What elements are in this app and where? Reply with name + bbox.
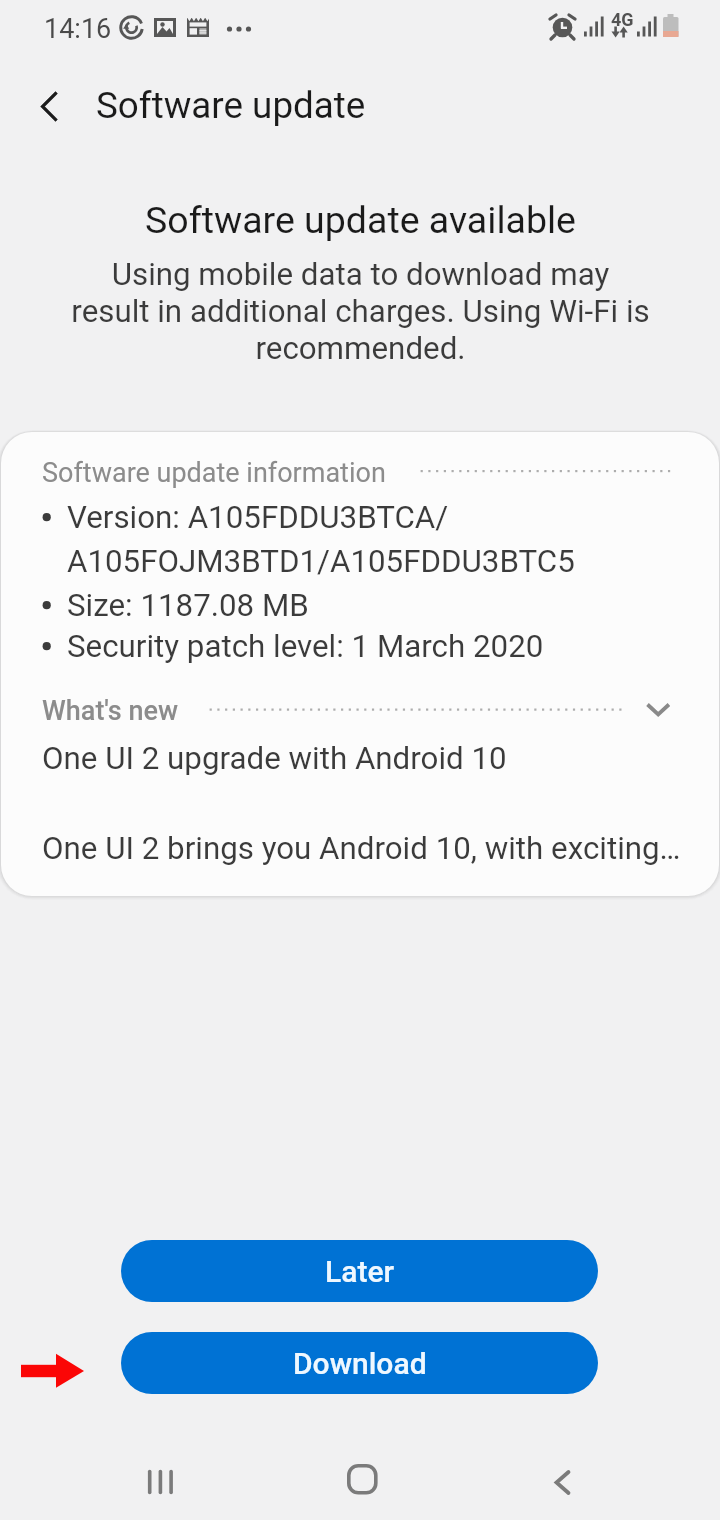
staticText: Size: 1187.08 MB	[67, 587, 309, 624]
button[interactable]: Home	[322, 1435, 402, 1515]
staticText: 4G	[611, 9, 634, 30]
button[interactable]: Recent apps	[120, 1435, 200, 1515]
staticText: Download	[293, 1346, 427, 1381]
staticText: What's new	[42, 695, 178, 727]
button[interactable]: What's new	[1, 684, 719, 730]
staticText: Security patch level: 1 March 2020	[67, 628, 544, 665]
staticText: Software update information	[42, 457, 386, 489]
button[interactable]: Download	[121, 1332, 598, 1394]
staticText: Software update available	[145, 198, 576, 242]
staticText: Version: A105FDDU3BTCA/ A105FOJM3BTD1/A1…	[67, 499, 575, 579]
staticText: Software update	[96, 84, 366, 127]
staticText: Using mobile data to download may result…	[71, 256, 650, 367]
button[interactable]: Later	[121, 1240, 598, 1302]
staticText: One UI 2 brings you Android 10, with exc…	[42, 830, 681, 867]
staticText: Later	[325, 1254, 395, 1289]
button[interactable]: Back	[18, 78, 74, 134]
staticText: 14:16	[44, 13, 112, 45]
staticText: One UI 2 upgrade with Android 10	[42, 740, 507, 777]
button[interactable]: Back	[523, 1435, 603, 1515]
